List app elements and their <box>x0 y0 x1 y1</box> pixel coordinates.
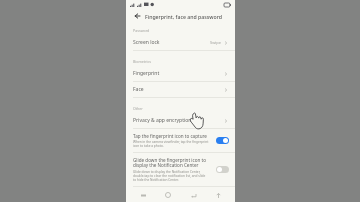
staticText: When in the camera viewfinder, tap the f… <box>133 140 212 148</box>
button[interactable]: Recents <box>136 188 150 202</box>
button[interactable]: Back <box>132 11 142 21</box>
button[interactable]: Face <box>126 82 235 97</box>
staticText: Password <box>133 28 150 33</box>
staticText: Screen lock <box>133 39 160 46</box>
button[interactable]: Back <box>186 188 200 202</box>
button[interactable]: Glide down the fingerprint icon to displ… <box>126 153 235 186</box>
button[interactable]: On <box>216 137 229 144</box>
button[interactable]: Share <box>211 188 225 202</box>
staticText: Tap the fingerprint icon to capture <box>133 133 207 139</box>
button[interactable]: Privacy & app encryption <box>126 113 235 128</box>
staticText: Fingerprint, face and password <box>145 13 222 20</box>
button[interactable]: Fingerprint <box>126 66 235 81</box>
staticText: Fingerprint <box>133 70 160 77</box>
button[interactable]: Home <box>161 188 175 202</box>
staticText: Other <box>133 106 143 111</box>
staticText: Biometrics <box>133 59 151 64</box>
staticText: Glide down to display the Notification C… <box>133 170 206 182</box>
button[interactable]: Off <box>216 166 229 173</box>
staticText: Privacy & app encryption <box>133 117 192 124</box>
staticText: Swipe <box>210 40 222 45</box>
button[interactable]: Tap the fingerprint icon to capture <box>126 129 235 152</box>
staticText: Face <box>133 86 144 93</box>
staticText: Glide down the fingerprint icon to displ… <box>133 157 206 169</box>
button[interactable]: Screen lock <box>126 35 235 50</box>
